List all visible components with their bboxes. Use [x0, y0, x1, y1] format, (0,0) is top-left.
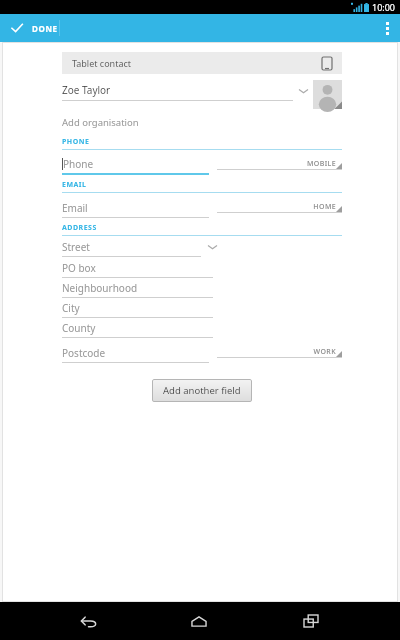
button[interactable]: PO box — [62, 258, 213, 278]
staticText: 10:00 — [372, 1, 396, 13]
staticText: DONE — [32, 23, 58, 34]
staticText: Email — [62, 201, 88, 215]
button[interactable]: Add organisation — [62, 116, 342, 131]
button[interactable]: Contact photo — [313, 80, 342, 109]
button[interactable]: Home — [176, 602, 222, 640]
button[interactable]: MOBILE — [217, 150, 342, 175]
button[interactable]: Phone — [62, 154, 209, 175]
staticText: WORK — [313, 347, 336, 357]
button[interactable]: Postcode — [62, 343, 209, 363]
staticText: Phone — [63, 157, 94, 171]
button[interactable]: Zoe Taylor — [62, 80, 293, 100]
staticText: PO box — [62, 261, 96, 275]
button[interactable]: DONE — [0, 14, 70, 42]
staticText: City — [62, 301, 80, 315]
button[interactable]: County — [62, 318, 213, 338]
staticText: MOBILE — [306, 159, 336, 169]
staticText: Zoe Taylor — [62, 83, 111, 97]
staticText: Postcode — [62, 346, 106, 360]
staticText: County — [62, 321, 96, 335]
staticText: Neighbourhood — [62, 281, 138, 295]
button[interactable]: Back — [65, 602, 111, 640]
button[interactable]: Email — [62, 198, 209, 218]
button[interactable]: WORK — [217, 338, 342, 363]
staticText: Street — [62, 240, 90, 254]
button[interactable]: Expand name — [293, 80, 313, 101]
button[interactable]: Add another field — [152, 379, 252, 402]
staticText: EMAIL — [62, 180, 87, 190]
staticText: HOME — [313, 202, 336, 212]
button[interactable]: City — [62, 298, 213, 318]
button[interactable]: HOME — [217, 193, 342, 218]
button[interactable]: Neighbourhood — [62, 278, 213, 298]
staticText: Tablet contact — [72, 57, 132, 69]
staticText: Add another field — [163, 384, 241, 397]
staticText: Add organisation — [62, 116, 139, 129]
button[interactable]: Street — [62, 237, 201, 257]
button[interactable]: More options — [374, 14, 400, 42]
button[interactable]: Recent apps — [288, 602, 334, 640]
button[interactable]: Expand address — [201, 236, 223, 258]
button[interactable]: Tablet contact — [62, 52, 342, 74]
staticText: ADDRESS — [62, 223, 97, 233]
staticText: PHONE — [62, 137, 90, 147]
